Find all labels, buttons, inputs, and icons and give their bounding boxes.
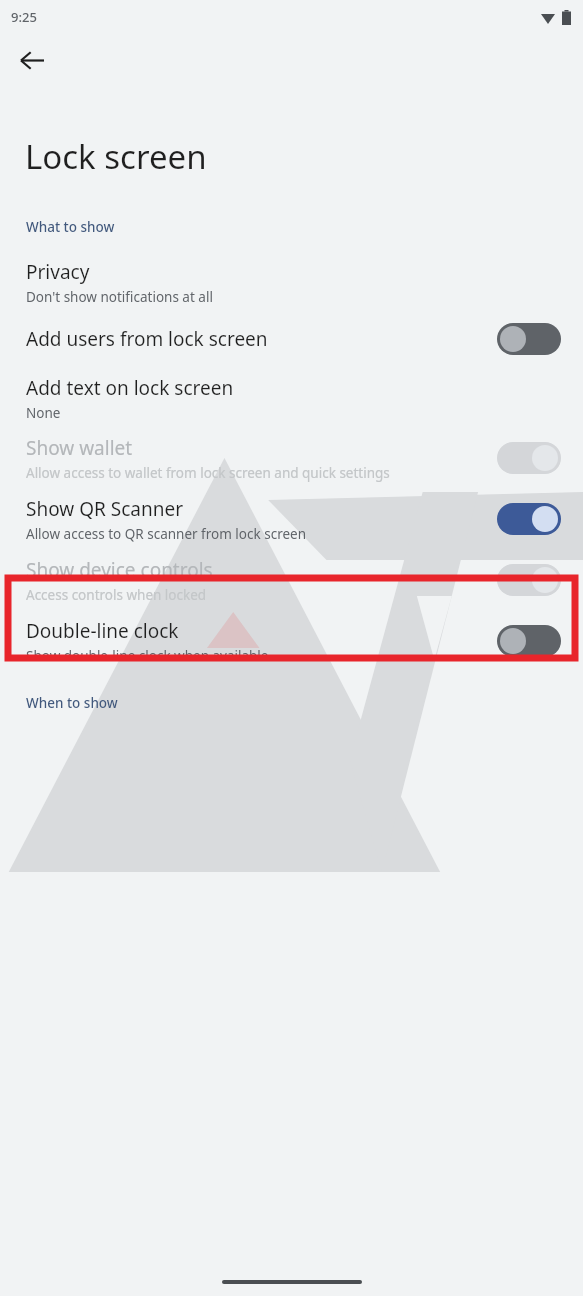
staticText: What to show [26, 218, 115, 236]
staticText: Show double-line clock when available [26, 647, 269, 665]
button[interactable]: Privacy [0, 254, 583, 310]
other: Double-line clock [497, 625, 561, 657]
staticText: Add users from lock screen [26, 326, 268, 352]
staticText: Access controls when locked [26, 586, 207, 604]
staticText: When to show [26, 694, 118, 712]
staticText: Allow access to QR scanner from lock scr… [26, 525, 307, 543]
button[interactable]: Double-line clock [0, 610, 583, 672]
button[interactable]: Show device controls [0, 550, 583, 610]
button[interactable]: Add text on lock screen [0, 368, 583, 428]
button[interactable]: Show wallet [0, 428, 583, 488]
button[interactable]: Add users from lock screen [0, 310, 583, 368]
staticText: Show device controls [26, 557, 213, 583]
other: Show wallet [497, 442, 561, 474]
other: Show QR Scanner [497, 503, 561, 535]
staticText: 9:25 [11, 8, 37, 26]
staticText: Don't show notifications at all [26, 288, 213, 306]
staticText: Show QR Scanner [26, 496, 184, 522]
other: Add users from lock screen [497, 323, 561, 355]
staticText: None [26, 404, 61, 422]
staticText: Privacy [26, 259, 90, 285]
other: Show device controls [497, 564, 561, 596]
button[interactable]: Show QR Scanner [0, 488, 583, 550]
staticText: Add text on lock screen [26, 375, 234, 401]
staticText: Allow access to wallet from lock screen … [26, 464, 390, 482]
staticText: Show wallet [26, 435, 133, 461]
staticText: Lock screen [25, 134, 207, 179]
button[interactable]: Back [12, 34, 52, 86]
staticText: Double-line clock [26, 618, 179, 644]
